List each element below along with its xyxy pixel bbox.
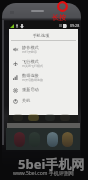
button[interactable]: Key [47,132,58,147]
staticText: 已打开静音 [22,50,37,54]
staticText: 已关闭飞行模式 [22,64,43,68]
button[interactable]: Key [29,132,40,147]
staticText: 5bei手机网 [18,155,85,173]
button[interactable]: Key [62,132,73,147]
staticText: 静音模式 [22,45,39,50]
staticText: 关机 [22,98,31,103]
staticText: 已开启数据连接 [22,78,43,82]
staticText: 手机选项 [9,33,73,38]
button[interactable]: 静音模式 [9,42,78,56]
button[interactable]: 关机 [9,95,78,106]
button[interactable]: Key [14,132,25,147]
staticText: 数据连接 [22,73,39,78]
button[interactable]: 飞行模式 [9,56,78,70]
staticText: www.5bei.com 手机评测网 [13,170,74,177]
staticText: 飞行模式 [22,59,39,64]
staticText: 09:28 [70,23,80,28]
button[interactable]: 数据连接 [9,70,78,84]
staticText: 重新启动 [22,87,39,92]
staticText: 长按 [52,13,66,22]
button[interactable]: 重新启动 [9,84,78,95]
